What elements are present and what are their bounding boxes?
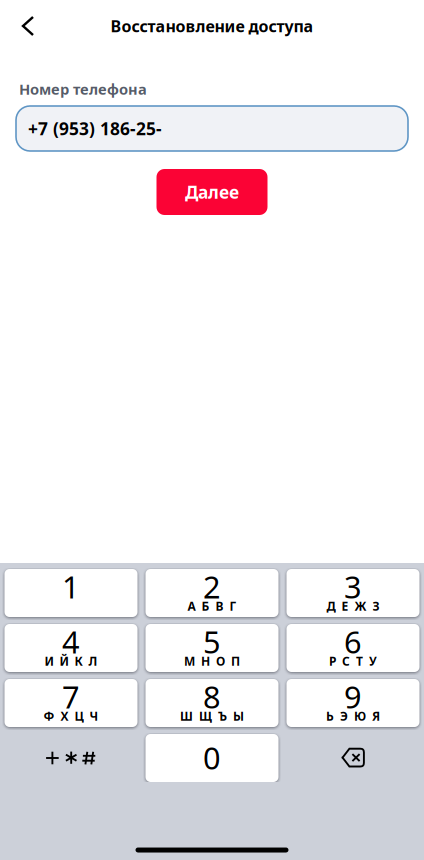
staticText: 2 <box>203 566 221 607</box>
button[interactable]: 1 <box>4 569 137 617</box>
button[interactable]: 5 <box>145 624 278 672</box>
staticText: 4 <box>62 621 80 662</box>
staticText: Ъ <box>218 708 227 724</box>
button[interactable]: 4 <box>4 624 137 672</box>
staticText: +7 (953) 186-25- <box>28 117 162 140</box>
staticText: Р <box>329 653 336 669</box>
staticText: З <box>372 598 379 614</box>
staticText: 1 <box>62 566 80 607</box>
button[interactable]: Delete <box>286 734 419 782</box>
staticText: 0 <box>203 737 221 778</box>
staticText: Ч <box>89 708 98 724</box>
staticText: 6 <box>344 621 362 662</box>
button[interactable]: 0 <box>145 734 278 782</box>
staticText: Ы <box>233 708 244 724</box>
staticText: К <box>74 653 82 669</box>
staticText: Ц <box>74 708 83 724</box>
button[interactable]: Далее <box>156 169 267 215</box>
staticText: Х <box>60 708 68 724</box>
staticText: Ж <box>354 598 366 614</box>
staticText: Т <box>356 653 363 669</box>
staticText: 8 <box>203 676 221 717</box>
staticText: Ю <box>354 708 366 724</box>
staticText: 9 <box>344 676 362 717</box>
button[interactable]: 2 <box>145 569 278 617</box>
button[interactable]: 8 <box>145 679 278 727</box>
staticText: Е <box>341 598 348 614</box>
staticText: В <box>215 598 223 614</box>
staticText: Б <box>201 598 209 614</box>
staticText: Номер телефона <box>19 79 147 99</box>
staticText: 5 <box>203 621 221 662</box>
staticText: Й <box>59 653 68 669</box>
staticText: Далее <box>185 180 239 203</box>
staticText: П <box>231 653 240 669</box>
staticText: А <box>187 598 195 614</box>
staticText: 7 <box>62 676 80 717</box>
staticText: Г <box>229 598 236 614</box>
staticText: 3 <box>344 566 362 607</box>
button[interactable]: 7 <box>4 679 137 727</box>
staticText: Ш <box>180 708 193 724</box>
button[interactable]: 9 <box>286 679 419 727</box>
staticText: Н <box>201 653 210 669</box>
button[interactable]: Symbols <box>4 734 137 782</box>
staticText: Ь <box>326 708 334 724</box>
staticText: Д <box>326 598 335 614</box>
button[interactable]: Back <box>0 4 48 48</box>
button[interactable]: 6 <box>286 624 419 672</box>
staticText: С <box>342 653 350 669</box>
button[interactable]: 3 <box>286 569 419 617</box>
staticText: Я <box>372 708 380 724</box>
staticText: Э <box>340 708 348 724</box>
staticText: Л <box>88 653 97 669</box>
staticText: О <box>216 653 225 669</box>
staticText: И <box>44 653 53 669</box>
staticText: Восстановление доступа <box>110 15 313 37</box>
staticText: М <box>184 653 195 669</box>
staticText: Ф <box>43 708 54 724</box>
staticText: Щ <box>199 708 212 724</box>
staticText: У <box>369 653 377 669</box>
